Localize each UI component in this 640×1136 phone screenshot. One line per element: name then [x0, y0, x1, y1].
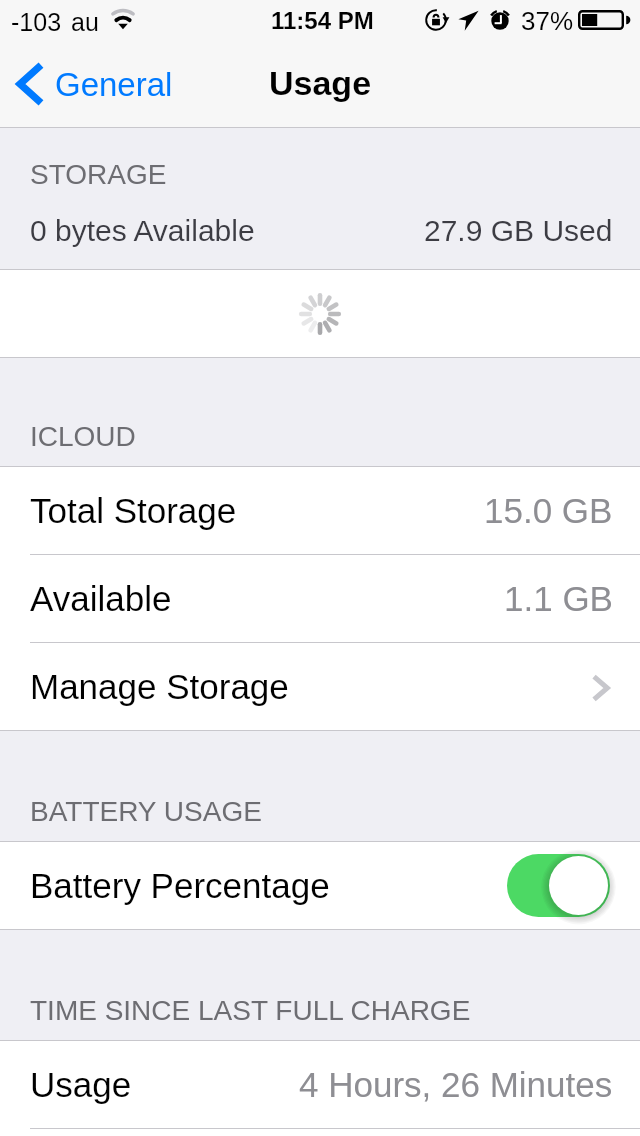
staticText: 11:54 PM	[271, 7, 374, 34]
staticText: au	[71, 8, 99, 36]
staticText: 4 Hours, 26 Minutes	[299, 1065, 613, 1104]
staticText: 15.0 GB	[484, 491, 613, 530]
staticText: Total Storage	[30, 491, 237, 530]
staticText: TIME SINCE LAST FULL CHARGE	[30, 995, 471, 1026]
staticText: Usage	[30, 1065, 132, 1104]
staticText: Available	[30, 579, 172, 618]
staticText: 27.9 GB Used	[424, 214, 613, 248]
button[interactable]: Battery Percentage	[0, 842, 640, 929]
button[interactable]: Usage	[0, 1041, 640, 1128]
staticText: STORAGE	[30, 159, 167, 190]
staticText: Manage Storage	[30, 667, 289, 706]
staticText: 37%	[521, 6, 574, 35]
staticText: Battery Percentage	[30, 866, 330, 905]
staticText: 1.1 GB	[504, 579, 613, 618]
button[interactable]: Available	[0, 555, 640, 642]
button[interactable]: Manage Storage	[0, 643, 640, 730]
staticText: -103	[11, 8, 62, 36]
button[interactable]: Battery Percentage toggle	[507, 854, 610, 917]
button[interactable]: Total Storage	[0, 467, 640, 554]
button[interactable]: General	[0, 55, 187, 113]
staticText: ICLOUD	[30, 421, 136, 452]
staticText: 0 bytes Available	[30, 214, 255, 248]
staticText: General	[55, 66, 173, 103]
staticText: Usage	[269, 64, 372, 102]
staticText: BATTERY USAGE	[30, 796, 262, 827]
